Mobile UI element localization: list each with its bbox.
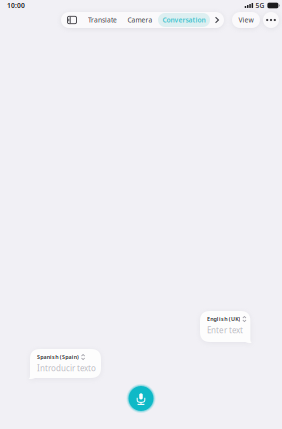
staticText: Conversation — [162, 16, 205, 24]
staticText: English (UK) — [207, 315, 240, 323]
staticText: View — [238, 16, 253, 24]
button[interactable]: English (UK) — [200, 311, 252, 343]
staticText: Enter text — [207, 325, 243, 335]
staticText: 5G — [255, 1, 264, 10]
button[interactable]: View — [232, 12, 260, 28]
button[interactable]: More modes — [210, 12, 224, 28]
button[interactable]: Record — [126, 384, 155, 413]
staticText: Introducir texto — [37, 363, 96, 373]
staticText: Camera — [127, 16, 152, 24]
button[interactable]: Camera — [122, 12, 158, 28]
button[interactable]: Conversation — [158, 13, 210, 27]
staticText: Translate — [88, 16, 117, 24]
button[interactable]: More — [263, 12, 279, 28]
staticText: Spanish (Spain) — [37, 353, 79, 361]
staticText: 10:00 — [7, 1, 25, 10]
button[interactable]: Spanish (Spain) — [30, 349, 101, 379]
button[interactable]: Translate — [83, 12, 122, 28]
button[interactable]: Sidebar — [61, 12, 83, 28]
